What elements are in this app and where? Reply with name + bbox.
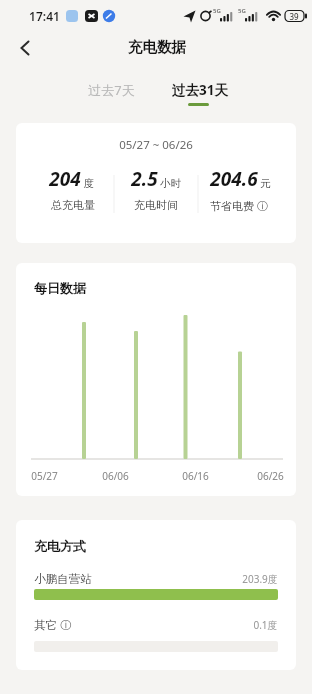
staticText: 203.9度 [242,572,278,586]
staticText: 39 [289,11,299,22]
staticText: 其它 ⓘ [34,617,72,633]
staticText: 06/16 [182,469,209,483]
staticText: 小鹏自营站 [34,572,92,586]
staticText: 06/26 [257,469,284,483]
staticText: 05/27 [31,469,58,483]
staticText: 小时 [160,177,181,190]
button[interactable]: 其它 ⓘ [16,611,296,639]
staticText: 5G [213,7,221,15]
staticText: 17:41 [29,8,60,24]
staticText: 过去7天 [88,81,135,99]
staticText: 充电数据 [128,38,186,56]
staticText: 5G [238,7,246,15]
staticText: 204.6 [210,166,258,192]
staticText: 0.1度 [253,618,278,632]
button[interactable]: 过去31天 [155,76,245,104]
button[interactable]: 过去7天 [66,76,156,104]
staticText: 度 [83,177,94,190]
staticText: 06/06 [102,469,129,483]
staticText: 05/27 ~ 06/26 [119,137,193,153]
staticText: 过去31天 [172,81,228,99]
staticText: 2.5 [131,166,158,192]
staticText: 充电方式 [34,538,86,554]
button[interactable] [10,32,40,62]
staticText: 204 [49,166,81,192]
staticText: 节省电费 ⓘ [210,198,268,213]
staticText: 充电时间 [134,198,178,212]
staticText: 总充电量 [51,198,95,212]
button[interactable]: 小鹏自营站 [16,565,296,593]
staticText: 每日数据 [34,280,86,296]
staticText: 元 [260,177,271,190]
